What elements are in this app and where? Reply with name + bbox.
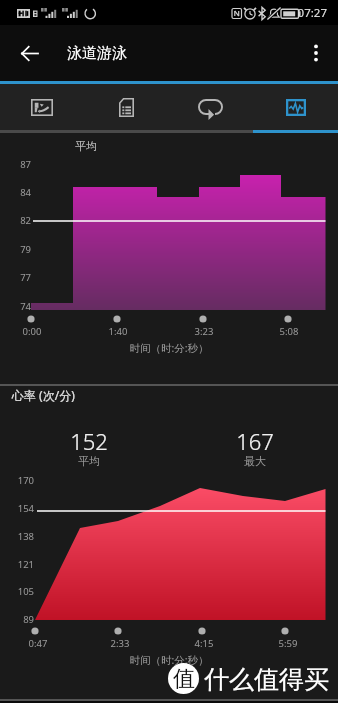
staticText: 07:27 — [287, 5, 327, 21]
button[interactable]: Laps — [168, 84, 253, 130]
staticText: 泳道游泳 — [67, 44, 127, 63]
staticText: 138 — [0, 530, 34, 543]
staticText: 89 — [0, 613, 34, 626]
staticText: 5:08 — [267, 325, 311, 338]
staticText: 0:47 — [16, 637, 60, 650]
staticText: 4:15 — [182, 637, 226, 650]
staticText: 87 — [0, 158, 31, 171]
staticText: 154 — [0, 502, 34, 515]
staticText: 82 — [0, 214, 31, 227]
staticText: 74 — [0, 300, 31, 313]
staticText: 3:23 — [182, 325, 226, 338]
staticText: 121 — [0, 558, 34, 571]
staticText: 77 — [0, 271, 31, 284]
staticText: 平均 — [49, 454, 129, 468]
button[interactable]: Charts — [253, 84, 338, 130]
staticText: 167 — [215, 426, 295, 456]
staticText: 105 — [0, 585, 34, 598]
staticText: 时间（时:分:秒） — [89, 653, 249, 667]
staticText: 152 — [49, 426, 129, 456]
staticText: 平均 — [64, 139, 108, 153]
staticText: 1:40 — [96, 325, 140, 338]
staticText: 2:33 — [98, 637, 142, 650]
staticText: 心率 (次/分) — [12, 387, 75, 403]
staticText: 什么值得买 — [204, 664, 329, 695]
button[interactable]: Back — [11, 35, 47, 71]
staticText: 0:00 — [10, 325, 54, 338]
staticText: 最大 — [215, 454, 295, 468]
button[interactable]: More options — [298, 35, 334, 71]
staticText: 79 — [0, 243, 31, 256]
staticText: 值 — [173, 665, 195, 693]
button[interactable]: Details — [84, 84, 168, 130]
staticText: 5:59 — [266, 637, 310, 650]
staticText: 84 — [0, 186, 31, 199]
button[interactable]: Route — [0, 84, 84, 130]
staticText: 时间（时:分:秒） — [89, 341, 249, 355]
staticText: 170 — [0, 474, 34, 487]
